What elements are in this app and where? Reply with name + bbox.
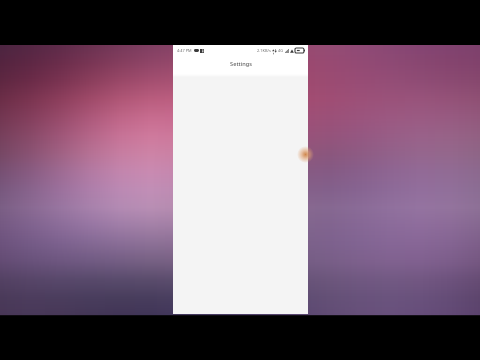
staticText: Settings bbox=[230, 60, 252, 68]
staticText: 4:47 PM bbox=[177, 48, 192, 53]
button[interactable]: Settings bbox=[173, 56, 308, 74]
staticText: 2.1KB/s bbox=[257, 48, 271, 53]
staticText: 4G bbox=[278, 48, 284, 53]
